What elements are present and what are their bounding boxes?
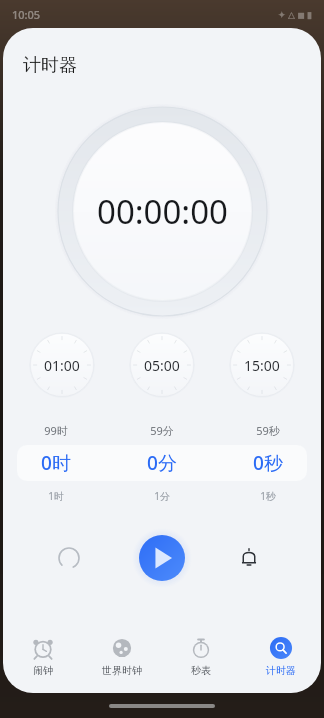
button[interactable]: 59秒	[215, 416, 321, 510]
staticText: 闹钟	[33, 664, 53, 677]
staticText: 15:00	[244, 356, 280, 375]
staticText: 10:05	[12, 7, 41, 22]
button[interactable]: 59分	[109, 416, 215, 510]
button[interactable]: 15:00	[229, 332, 295, 398]
button[interactable]: 05:00	[129, 332, 195, 398]
staticText: 1秒	[260, 489, 276, 503]
staticText: 0时	[41, 450, 71, 476]
staticText: 59分	[150, 423, 174, 438]
staticText: 0分	[147, 450, 177, 476]
staticText: 秒表	[191, 664, 211, 677]
staticText: 计时器	[23, 54, 77, 77]
button[interactable]: 闹钟	[3, 627, 82, 685]
staticText: 00:00:00	[97, 189, 228, 234]
button[interactable]: Start	[132, 528, 192, 588]
button[interactable]: Ringtone	[227, 536, 271, 580]
staticText: 1时	[48, 489, 64, 503]
button[interactable]: 秒表	[161, 627, 241, 685]
staticText: 05:00	[144, 356, 180, 375]
staticText: 01:00	[44, 356, 80, 375]
staticText: ✦ △ ◼ ▮	[278, 8, 312, 20]
button[interactable]: 世界时钟	[82, 627, 161, 685]
staticText: 1分	[154, 489, 170, 503]
button[interactable]: Reset	[47, 536, 91, 580]
staticText: 世界时钟	[102, 664, 142, 677]
button[interactable]: 计时器	[241, 627, 321, 685]
button[interactable]: 01:00	[29, 332, 95, 398]
button[interactable]: 99时	[3, 416, 109, 510]
staticText: 59秒	[256, 423, 280, 438]
staticText: 0秒	[253, 450, 283, 476]
staticText: 99时	[44, 423, 68, 438]
staticText: 计时器	[266, 664, 296, 677]
